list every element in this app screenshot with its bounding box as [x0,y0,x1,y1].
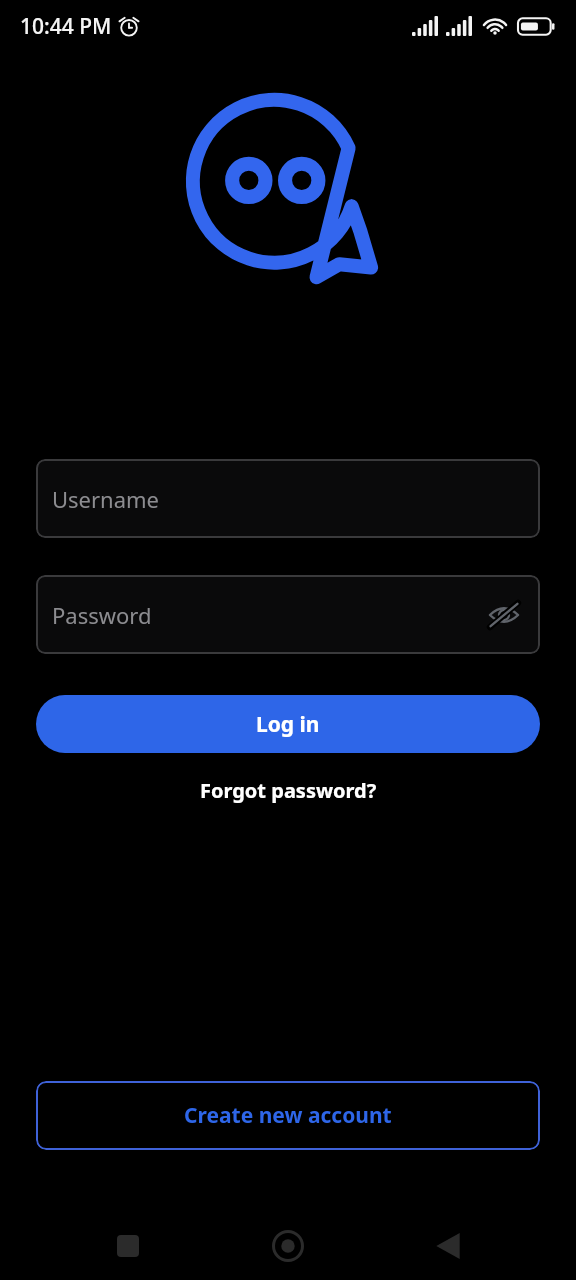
button[interactable]: Log in [36,695,540,753]
staticText: Username [52,484,160,514]
button[interactable]: Home [256,1215,320,1277]
staticText: Password [52,600,152,630]
button[interactable]: Create new account [36,1081,540,1150]
staticText: 10:44 PM [20,12,112,41]
button[interactable]: Forgot password? [188,771,389,810]
button[interactable]: Recents [96,1215,160,1277]
button[interactable]: Username [36,459,540,538]
button[interactable]: Show password [482,593,526,637]
button[interactable]: Password [36,575,540,654]
staticText: Create new account [184,1101,392,1130]
staticText: Log in [256,710,320,739]
button[interactable]: Back [416,1215,480,1277]
staticText: Forgot password? [200,777,377,804]
